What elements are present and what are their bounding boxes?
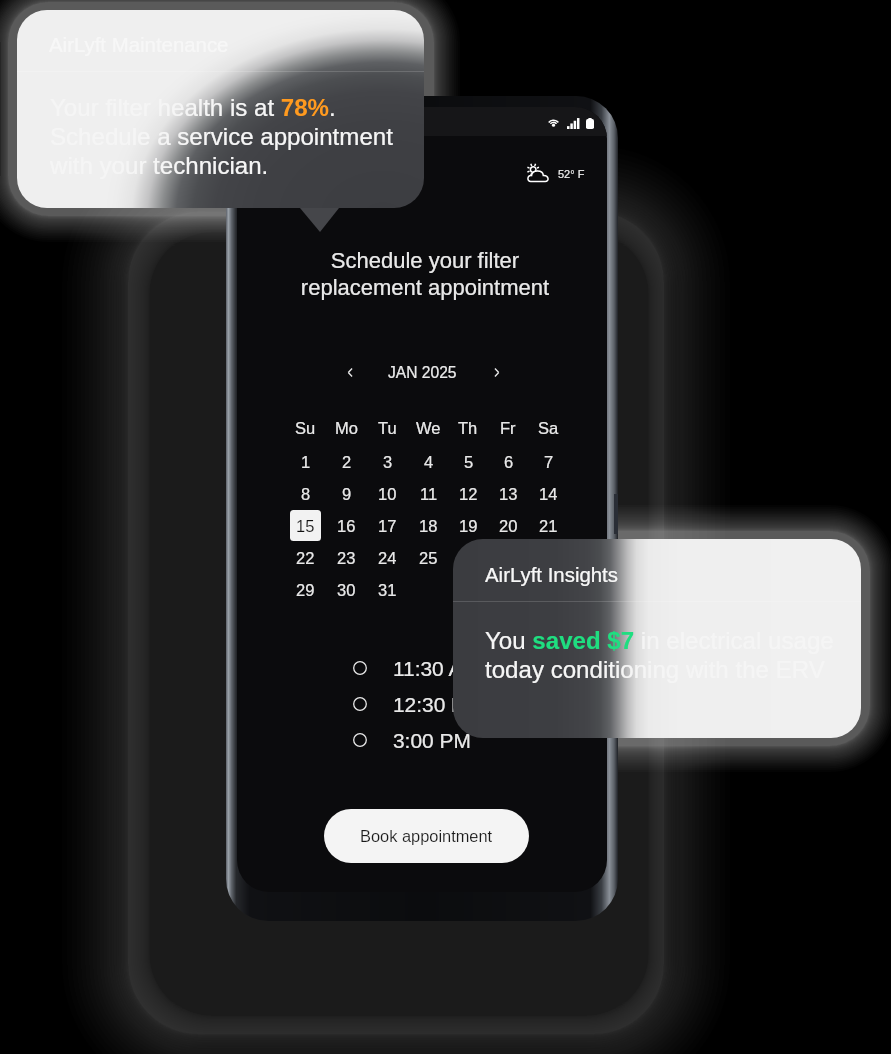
button[interactable]: 12: [453, 478, 484, 509]
button[interactable]: 6: [493, 446, 524, 477]
staticText: 52° F: [558, 168, 585, 180]
button[interactable]: AirLyft Insights: [453, 539, 861, 738]
button[interactable]: 27: [493, 542, 524, 573]
button[interactable]: AirLyft Maintenance: [17, 10, 424, 208]
staticText: 29: [296, 581, 315, 599]
button[interactable]: 5: [453, 446, 484, 477]
button[interactable]: 18: [413, 510, 444, 541]
staticText: 10: [378, 485, 397, 503]
staticText: 4: [424, 453, 434, 471]
button[interactable]: 14: [533, 478, 564, 509]
staticText: 15: [296, 517, 315, 535]
button[interactable]: Previous month: [337, 359, 363, 385]
staticText: Sa: [538, 419, 559, 437]
staticText: 17: [378, 517, 397, 535]
staticText: 21: [539, 517, 558, 535]
staticText: 9: [342, 485, 352, 503]
button[interactable]: 2: [331, 446, 362, 477]
staticText: 13: [499, 485, 518, 503]
button[interactable]: 10: [372, 478, 403, 509]
staticText: You saved $7 in electrical usage today c…: [485, 627, 834, 684]
button[interactable]: 28: [533, 542, 564, 573]
button[interactable]: 29: [290, 574, 321, 605]
staticText: 23: [337, 549, 356, 567]
button[interactable]: 13: [493, 478, 524, 509]
button[interactable]: 25: [413, 542, 444, 573]
button[interactable]: 21: [533, 510, 564, 541]
staticText: Book appointment: [360, 827, 493, 845]
button[interactable]: 24: [372, 542, 403, 573]
staticText: 5: [464, 453, 474, 471]
staticText: Schedule your filter replacement appoint…: [240, 248, 607, 300]
staticText: 3:00 PM: [393, 729, 471, 752]
button[interactable]: 1: [290, 446, 321, 477]
button[interactable]: 12:30 PM: [353, 686, 533, 722]
button[interactable]: 19: [453, 510, 484, 541]
staticText: 11:30 AM: [393, 657, 480, 680]
button[interactable]: 3: [372, 446, 403, 477]
staticText: AirLyft Insights: [485, 564, 618, 587]
staticText: 25: [419, 549, 438, 567]
button[interactable]: Book appointment: [324, 809, 529, 863]
staticText: 8: [301, 485, 311, 503]
button[interactable]: 11:30 AM: [353, 650, 533, 686]
staticText: Su: [295, 419, 316, 437]
button[interactable]: 17: [372, 510, 403, 541]
staticText: Mo: [335, 419, 358, 437]
button[interactable]: 7: [533, 446, 564, 477]
button[interactable]: 9: [331, 478, 362, 509]
button[interactable]: 20: [493, 510, 524, 541]
staticText: 30: [337, 581, 356, 599]
staticText: Your filter health is at 78%. Schedule a…: [50, 94, 393, 180]
button[interactable]: 11: [413, 478, 444, 509]
staticText: 3: [383, 453, 393, 471]
staticText: 14: [539, 485, 558, 503]
staticText: 6: [504, 453, 514, 471]
staticText: 20: [499, 517, 518, 535]
staticText: 16: [337, 517, 356, 535]
staticText: 22: [296, 549, 315, 567]
staticText: 24: [378, 549, 397, 567]
staticText: 26: [459, 549, 478, 567]
staticText: 12: [459, 485, 478, 503]
button[interactable]: 22: [290, 542, 321, 573]
staticText: 1: [301, 453, 311, 471]
button[interactable]: 16: [331, 510, 362, 541]
staticText: 18: [419, 517, 438, 535]
staticText: AirLyft Maintenance: [49, 34, 229, 57]
button[interactable]: 4: [413, 446, 444, 477]
staticText: 12:30 PM: [393, 693, 483, 716]
button[interactable]: 15: [290, 510, 321, 541]
staticText: 2: [342, 453, 352, 471]
staticText: JAN 2025: [388, 364, 457, 381]
button[interactable]: 26: [453, 542, 484, 573]
staticText: 31: [378, 581, 397, 599]
button[interactable]: 30: [331, 574, 362, 605]
button[interactable]: 31: [372, 574, 403, 605]
staticText: 19: [459, 517, 478, 535]
staticText: Th: [458, 419, 478, 437]
button[interactable]: 8: [290, 478, 321, 509]
button[interactable]: Next month: [483, 359, 509, 385]
staticText: We: [416, 419, 441, 437]
button[interactable]: 3:00 PM: [353, 722, 533, 758]
staticText: Tu: [378, 419, 397, 437]
staticText: Fr: [500, 419, 516, 437]
staticText: 11: [420, 485, 438, 503]
staticText: 7: [544, 453, 554, 471]
button[interactable]: 23: [331, 542, 362, 573]
